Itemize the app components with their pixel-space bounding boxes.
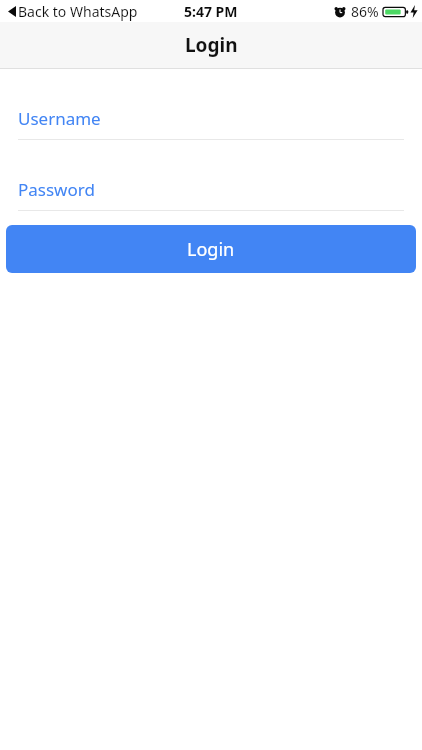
- staticText: Username: [18, 107, 101, 130]
- staticText: 5:47 PM: [184, 2, 238, 21]
- button[interactable]: Username: [0, 107, 422, 140]
- staticText: Login: [185, 32, 238, 58]
- staticText: Password: [18, 178, 95, 201]
- staticText: 86%: [351, 2, 379, 21]
- button[interactable]: Password: [0, 178, 422, 211]
- staticText: Login: [187, 237, 235, 262]
- button[interactable]: Login: [6, 225, 416, 273]
- button[interactable]: Back to WhatsApp: [6, 2, 140, 21]
- staticText: Back to WhatsApp: [18, 2, 138, 21]
